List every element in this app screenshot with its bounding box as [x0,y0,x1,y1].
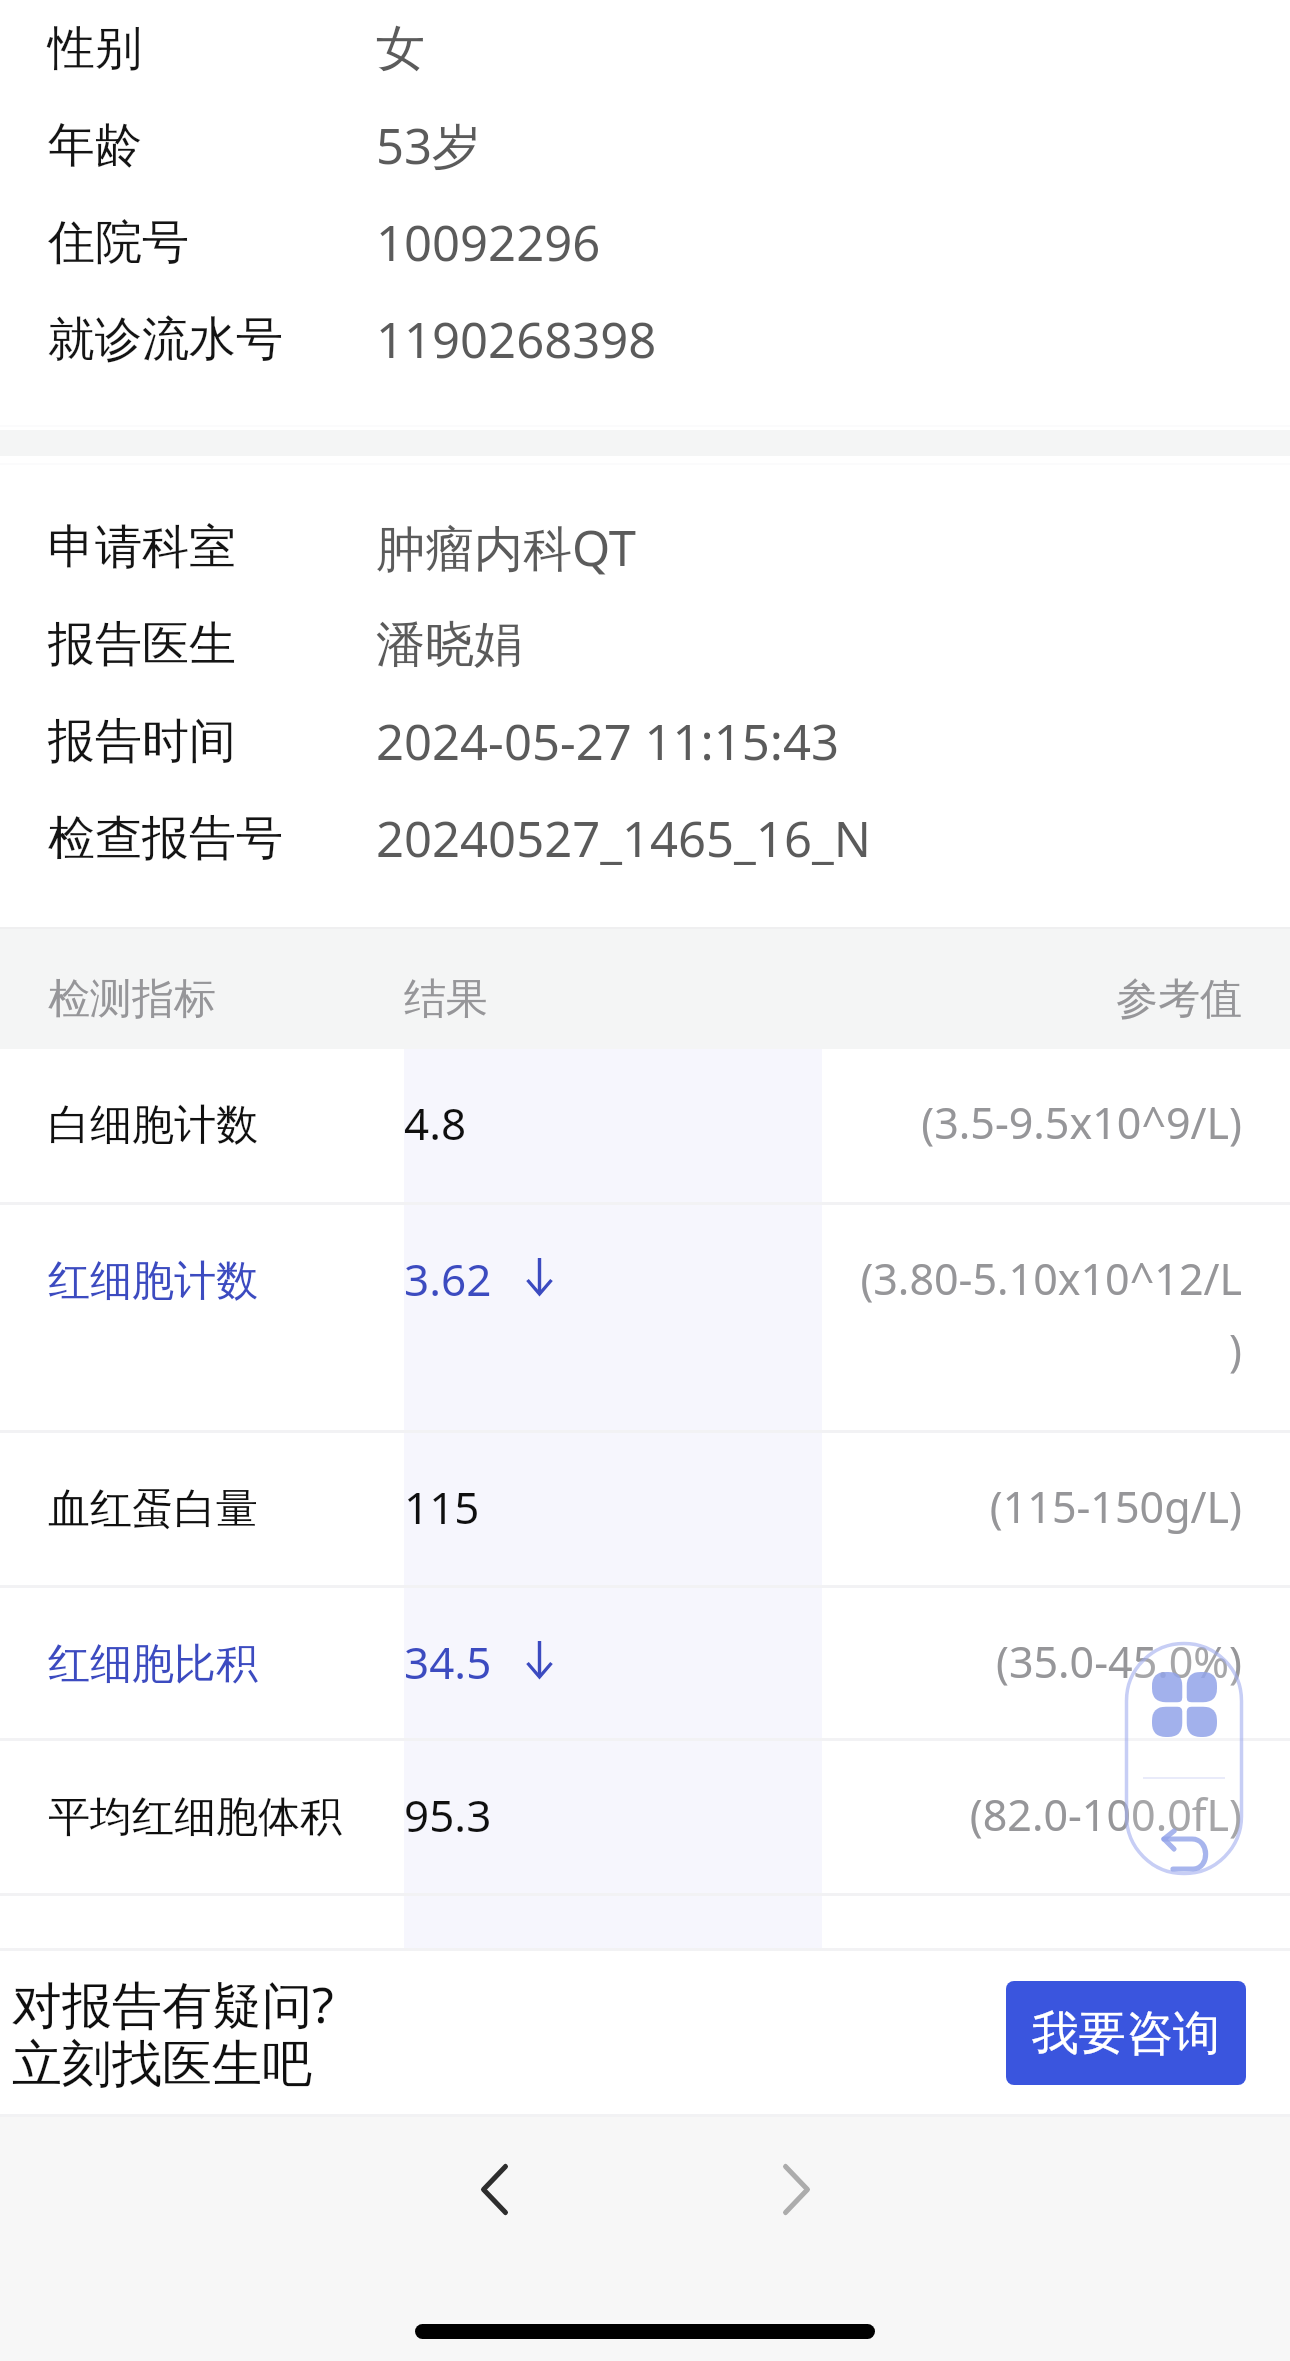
staticText: (35.0-45.0%) [995,1632,1242,1691]
staticText: 报告时间 [48,712,236,771]
button[interactable]: 白细胞计数 [0,1049,1290,1202]
button[interactable]: Forward [733,2120,859,2258]
staticText: (3.5-9.5x10^9/L) [921,1093,1242,1152]
staticText: 检测指标 [48,973,216,1026]
staticText: 对报告有疑问? 立刻找医生吧 [12,1970,334,2095]
staticText: 3.62 [404,1249,492,1309]
staticText: 报告医生 [48,615,236,674]
button[interactable]: 我要咨询 [1006,1981,1246,2085]
staticText: 我要咨询 [1032,2004,1220,2063]
staticText: (3.80-5.10x10^12/L ) [860,1249,1242,1378]
staticText: 参考值 [1116,973,1242,1026]
staticText: 申请科室 [48,518,236,577]
staticText: 95.3 [404,1785,492,1845]
button[interactable]: 血红蛋白量 [0,1433,1290,1585]
staticText: 血红蛋白量 [48,1483,258,1536]
staticText: 红细胞比积 [48,1638,258,1691]
staticText: 就诊流水号 [48,310,283,369]
staticText: 年龄 [48,116,142,175]
staticText: (115-150g/L) [989,1477,1242,1536]
staticText: 53岁 [376,112,482,179]
staticText: 白细胞计数 [48,1099,258,1152]
staticText: 平均红细胞体积 [48,1791,342,1844]
staticText: 115 [404,1477,480,1537]
staticText: 住院号 [48,213,189,272]
button[interactable]: 红细胞计数 [0,1205,1290,1430]
staticText: 10092296 [376,209,601,276]
button[interactable]: Back to home [1151,1822,1215,1878]
staticText: 结果 [404,973,488,1026]
staticText: 检查报告号 [48,809,283,868]
staticText: 2024-05-27 11:15:43 [376,708,839,775]
staticText: 潘晓娟 [376,614,523,676]
staticText: 34.5 [404,1632,492,1692]
button[interactable]: Back [431,2120,557,2258]
staticText: 4.8 [404,1093,467,1153]
staticText: 20240527_1465_16_N [376,805,871,872]
staticText: 1190268398 [376,306,657,373]
staticText: 肿瘤内科QT [376,514,637,581]
button[interactable]: Menu [1148,1668,1221,1741]
staticText: (82.0-100.0fL) [969,1785,1242,1844]
button[interactable]: 红细胞比积 [0,1588,1290,1738]
staticText: 女 [376,18,425,80]
staticText: 红细胞计数 [48,1255,258,1308]
staticText: 性别 [48,19,142,78]
button[interactable]: 平均红细胞体积 [0,1741,1290,1893]
